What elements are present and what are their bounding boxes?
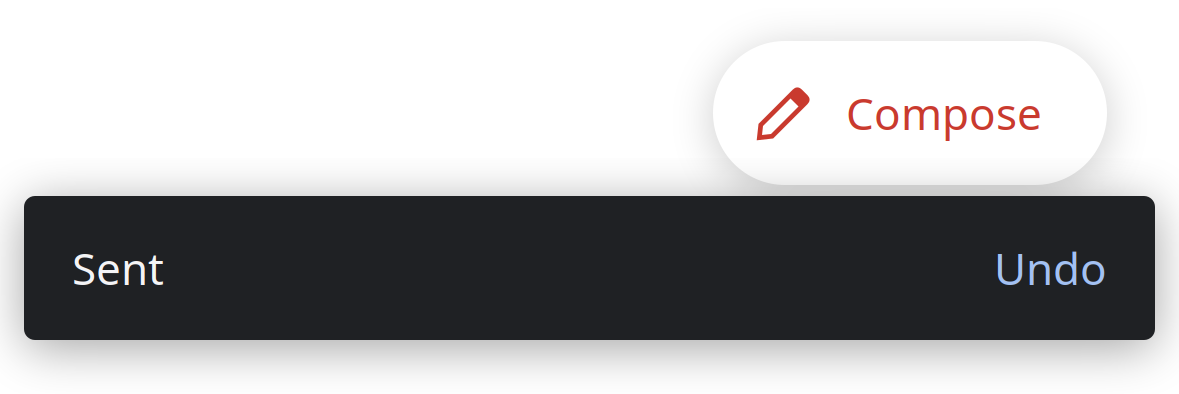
staticText: Sent — [72, 239, 164, 297]
staticText: Undo — [994, 239, 1107, 297]
button[interactable]: Compose — [713, 41, 1107, 185]
button[interactable]: Undo — [954, 196, 1155, 340]
staticText: Compose — [846, 84, 1042, 142]
